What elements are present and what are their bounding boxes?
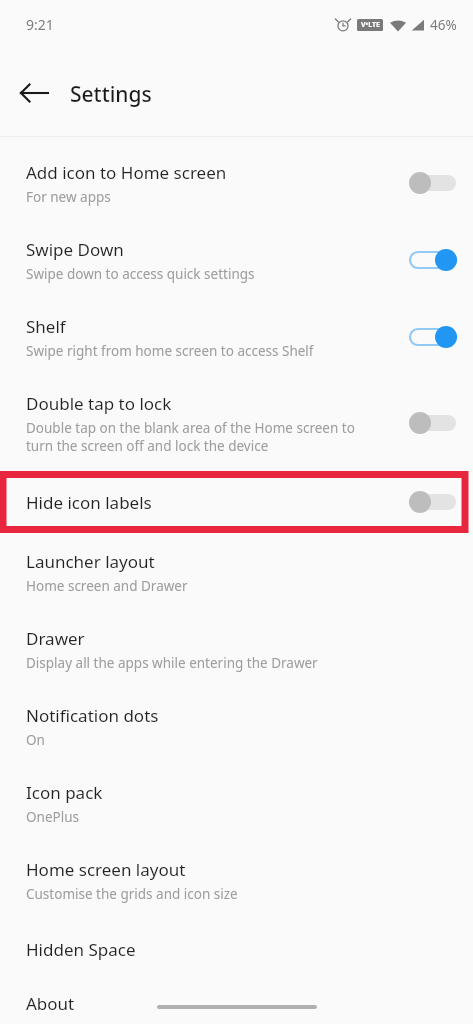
staticText: Customise the grids and icon size xyxy=(26,885,238,903)
button[interactable]: About xyxy=(0,982,473,1024)
button[interactable]: Launcher layout xyxy=(0,540,473,604)
staticText: Shelf xyxy=(26,315,66,338)
staticText: Drawer xyxy=(26,627,85,650)
staticText: About xyxy=(26,992,75,1015)
staticText: 9:21 xyxy=(26,15,54,34)
staticText: Add icon to Home screen xyxy=(26,161,227,184)
button[interactable]: Toggle off xyxy=(407,487,459,517)
button[interactable]: Hide icon labels xyxy=(0,471,473,533)
staticText: On xyxy=(26,731,45,749)
staticText: Display all the apps while entering the … xyxy=(26,654,318,672)
staticText: Double tap to lock xyxy=(26,392,172,415)
staticText: Notification dots xyxy=(26,704,159,727)
staticText: Hide icon labels xyxy=(26,491,407,514)
staticText: For new apps xyxy=(26,188,111,206)
staticText: Settings xyxy=(70,80,152,109)
staticText: Hidden Space xyxy=(26,938,136,961)
staticText: Home screen and Drawer xyxy=(26,577,188,595)
button[interactable]: Double tap to lock xyxy=(0,382,473,464)
button[interactable]: Shelf xyxy=(0,305,473,369)
staticText: Home screen layout xyxy=(26,858,186,881)
staticText: Launcher layout xyxy=(26,550,155,573)
staticText: Swipe right from home screen to access S… xyxy=(26,342,314,360)
staticText: 46% xyxy=(430,16,457,34)
button[interactable]: Back xyxy=(10,69,58,117)
button[interactable]: Swipe Down xyxy=(0,228,473,292)
staticText: turn the screen off and lock the device xyxy=(26,437,269,455)
button[interactable]: Toggle on xyxy=(407,245,459,275)
staticText: Icon pack xyxy=(26,781,103,804)
staticText: V•LTE xyxy=(361,20,380,30)
button[interactable]: Add icon to Home screen xyxy=(0,151,473,215)
button[interactable]: Home screen layout xyxy=(0,848,473,912)
button[interactable]: Toggle off xyxy=(407,168,459,198)
staticText: OnePlus xyxy=(26,808,79,826)
button[interactable]: Drawer xyxy=(0,617,473,681)
staticText: Double tap on the blank area of the Home… xyxy=(26,419,355,437)
button[interactable]: Notification dots xyxy=(0,694,473,758)
button[interactable]: Toggle off xyxy=(407,408,459,438)
staticText: Swipe Down xyxy=(26,238,124,261)
button[interactable]: Toggle on xyxy=(407,322,459,352)
button[interactable]: Icon pack xyxy=(0,771,473,835)
button[interactable]: Hidden Space xyxy=(0,925,473,973)
staticText: Swipe down to access quick settings xyxy=(26,265,255,283)
